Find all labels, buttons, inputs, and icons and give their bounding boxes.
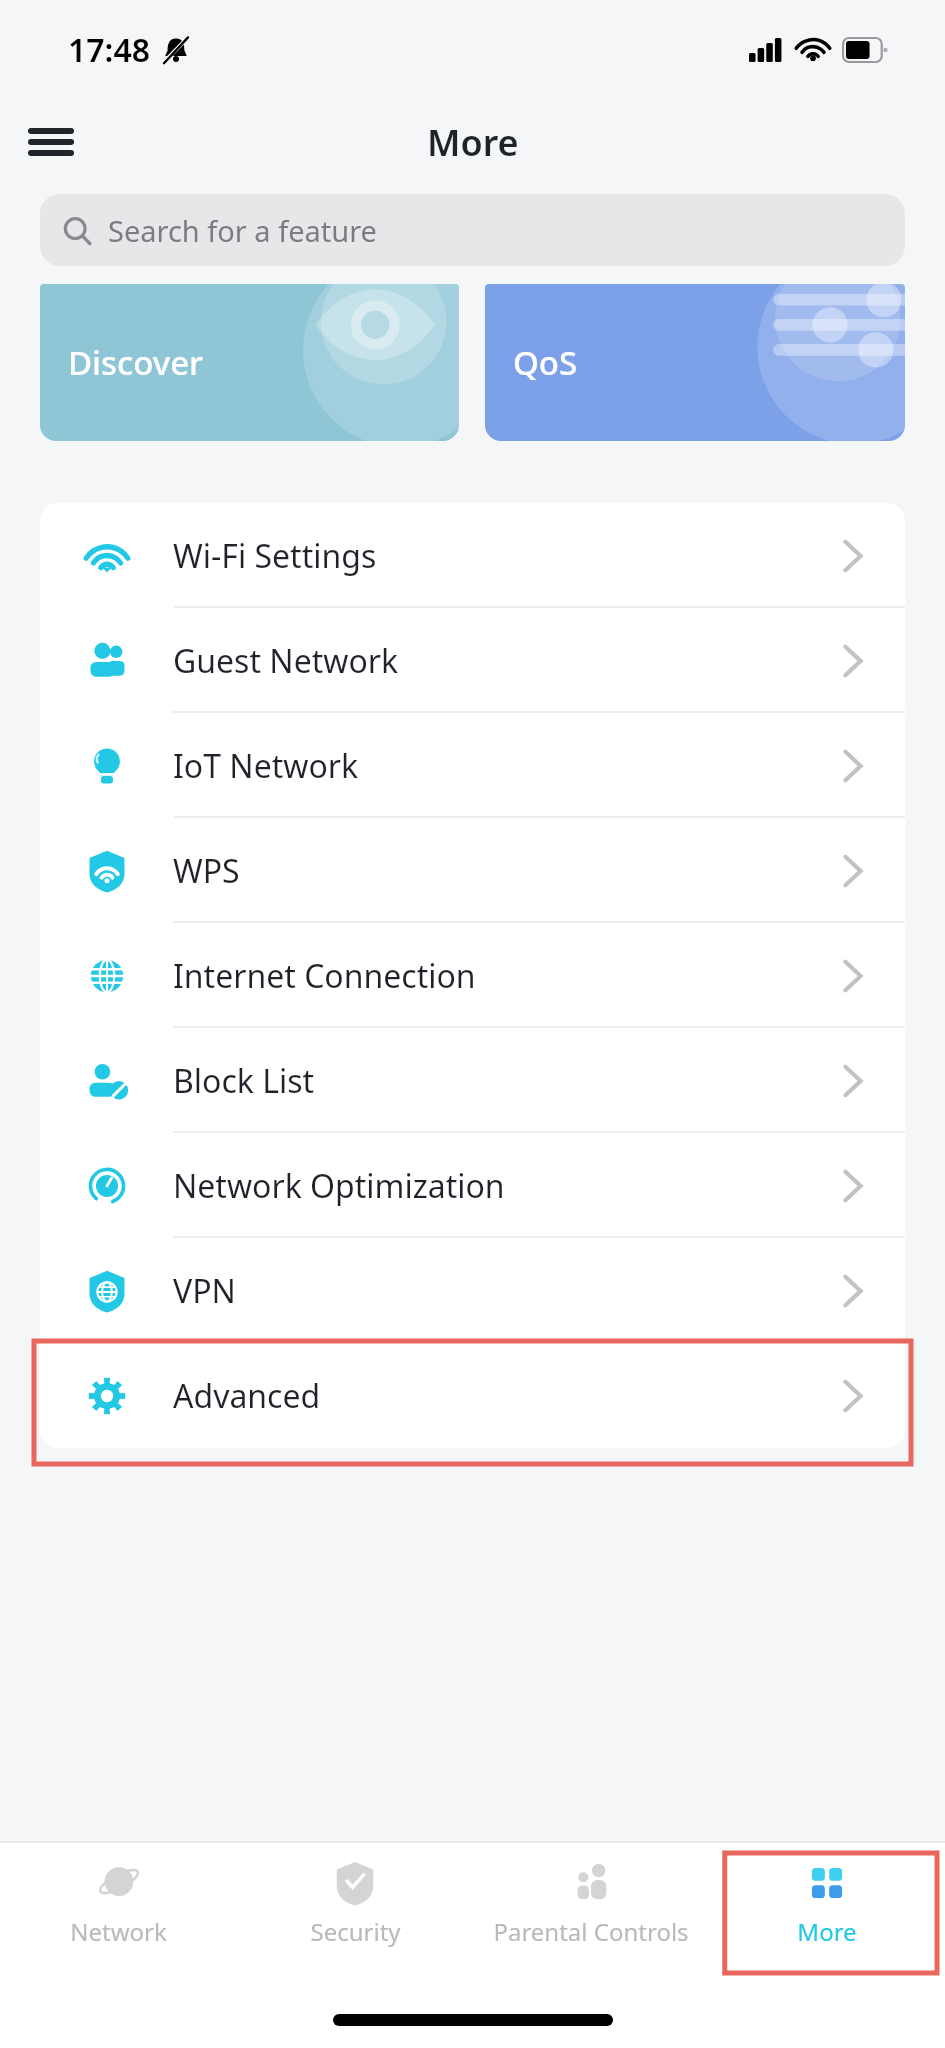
button[interactable]: Search for a feature (40, 194, 905, 266)
button[interactable]: WPS (40, 818, 905, 923)
button[interactable]: Discover (40, 284, 459, 441)
button[interactable]: Menu (20, 111, 82, 173)
staticText: More (427, 118, 519, 167)
button[interactable]: Advanced (40, 1343, 905, 1448)
button[interactable]: Internet Connection (40, 923, 905, 1028)
staticText: Parental Controls (493, 1915, 689, 1948)
button[interactable]: Wi-Fi Settings (40, 503, 905, 608)
staticText: Guest Network (173, 639, 399, 683)
staticText: Search for a feature (108, 211, 377, 250)
staticText: 17:48 (68, 28, 151, 72)
button[interactable]: Guest Network (40, 608, 905, 713)
staticText: Advanced (173, 1374, 321, 1418)
staticText: Wi-Fi Settings (173, 534, 377, 578)
staticText: Network Optimization (173, 1164, 505, 1208)
button[interactable]: Network Optimization (40, 1133, 905, 1238)
staticText: VPN (173, 1269, 236, 1313)
staticText: QoS (513, 340, 578, 385)
staticText: More (797, 1915, 857, 1948)
staticText: WPS (173, 849, 240, 893)
staticText: Network (70, 1915, 167, 1948)
button[interactable]: IoT Network (40, 713, 905, 818)
button[interactable]: More (709, 1843, 945, 1963)
staticText: IoT Network (173, 744, 359, 788)
button[interactable]: Security (237, 1843, 473, 1963)
staticText: Block List (173, 1059, 315, 1103)
button[interactable]: QoS (485, 284, 905, 441)
staticText: Internet Connection (173, 954, 476, 998)
button[interactable]: VPN (40, 1238, 905, 1343)
staticText: Security (310, 1915, 401, 1948)
button[interactable]: Network (0, 1843, 237, 1963)
staticText: Discover (68, 340, 204, 385)
button[interactable]: Block List (40, 1028, 905, 1133)
button[interactable]: Parental Controls (473, 1843, 709, 1963)
